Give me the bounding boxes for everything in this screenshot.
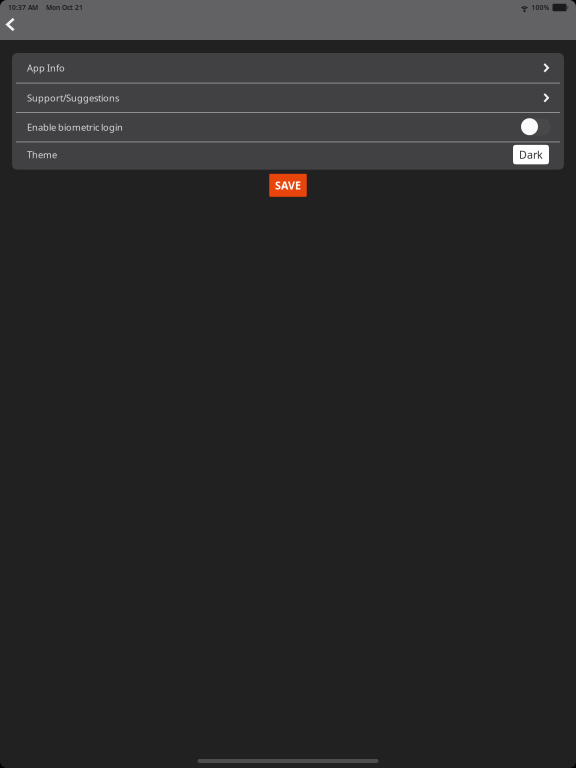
staticText: Enable biometric login [27,121,123,133]
button[interactable]: Dark [513,145,549,167]
button[interactable]: Back [0,12,21,43]
button[interactable]: Enable biometric login [521,118,551,136]
staticText: SAVE [275,178,301,192]
staticText: Dark [519,147,543,162]
button[interactable]: App Info [12,53,564,83]
staticText: App Info [27,62,65,74]
staticText: 10:37 AM [8,3,38,12]
staticText: 100% [531,3,549,12]
staticText: Support/Suggestions [27,92,119,104]
button[interactable]: Support/Suggestions [12,84,564,112]
staticText: Theme [27,148,57,161]
button[interactable]: SAVE [269,174,307,197]
staticText: Mon Oct 21 [46,3,83,12]
